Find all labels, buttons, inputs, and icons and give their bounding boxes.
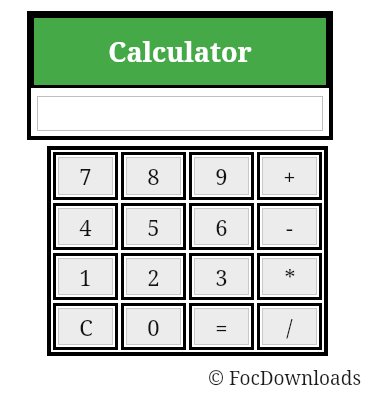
button[interactable]: 2	[126, 258, 181, 295]
staticText: /	[286, 312, 293, 342]
staticText: 4	[79, 212, 92, 242]
button[interactable]: 9	[194, 157, 249, 195]
staticText: 1	[79, 262, 92, 292]
staticText: 9	[215, 161, 228, 191]
button[interactable]: 7	[58, 157, 113, 195]
staticText: 3	[215, 262, 228, 292]
staticText: 0	[147, 312, 160, 342]
button[interactable]: 3	[194, 258, 249, 295]
button[interactable]: Plus	[262, 157, 317, 195]
staticText: =	[215, 312, 228, 342]
staticText: -	[286, 212, 293, 242]
button[interactable]: Minus	[262, 208, 317, 245]
button[interactable]: Clear	[58, 308, 113, 345]
button[interactable]: 6	[194, 208, 249, 245]
staticText: © FocDownloads	[208, 365, 361, 391]
staticText: 5	[147, 212, 160, 242]
staticText: *	[284, 262, 296, 292]
staticText: C	[79, 312, 93, 342]
button[interactable]: 1	[58, 258, 113, 295]
button[interactable]: Equals	[194, 308, 249, 345]
staticText: 8	[147, 161, 160, 191]
staticText: 6	[215, 212, 228, 242]
staticText: 7	[79, 161, 92, 191]
button[interactable]	[37, 96, 323, 131]
button[interactable]: 8	[126, 157, 181, 195]
button[interactable]: Divide	[262, 308, 317, 345]
staticText: 2	[147, 262, 160, 292]
button[interactable]: 0	[126, 308, 181, 345]
button[interactable]: 4	[58, 208, 113, 245]
button[interactable]: 5	[126, 208, 181, 245]
staticText: +	[283, 161, 296, 191]
button[interactable]: Multiply	[262, 258, 317, 295]
staticText: Calculator	[108, 33, 252, 70]
button[interactable]: © FocDownloads	[186, 364, 361, 392]
